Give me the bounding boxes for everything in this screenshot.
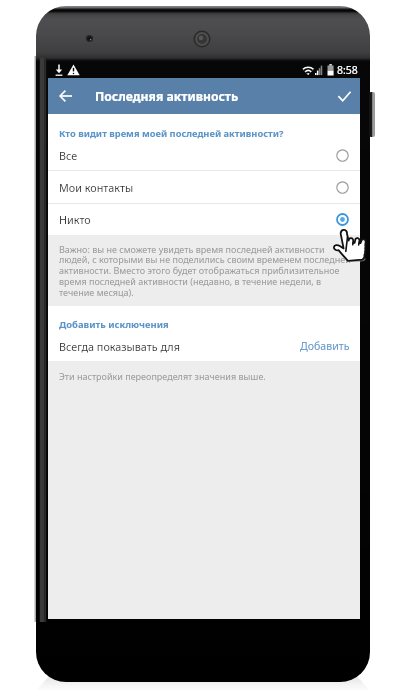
staticText: 8:58	[337, 63, 358, 77]
staticText: Важно: вы не сможете увидеть время после…	[59, 243, 352, 299]
staticText: Добавить	[300, 339, 350, 353]
button[interactable]: Все	[48, 140, 360, 170]
button[interactable]: Всегда показывать для	[48, 331, 360, 361]
staticText: Мои контакты	[59, 180, 134, 195]
button[interactable]: Назад	[48, 79, 82, 113]
button[interactable]: Готово	[326, 78, 362, 114]
staticText: Всегда показывать для	[59, 339, 180, 354]
staticText: Добавить исключения	[59, 318, 169, 331]
staticText: Последняя активность	[95, 88, 239, 105]
staticText: Эти настройки переопределят значения выш…	[59, 370, 266, 382]
staticText: Все	[59, 148, 78, 163]
staticText: Никто	[59, 212, 91, 227]
button[interactable]: Никто	[48, 204, 360, 235]
button[interactable]: Мои контакты	[48, 171, 360, 203]
staticText: Кто видит время моей последней активност…	[59, 127, 284, 140]
